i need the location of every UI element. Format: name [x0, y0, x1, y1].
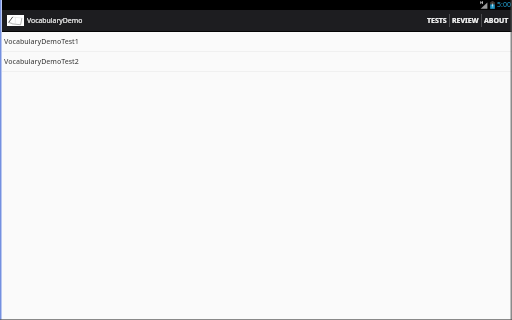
- staticText: 5:00: [497, 0, 511, 10]
- button[interactable]: REVIEW: [450, 10, 481, 31]
- button[interactable]: VocabularyDemoTest1: [0, 32, 512, 51]
- button[interactable]: App icon: [0, 10, 87, 31]
- staticText: TESTS: [427, 16, 447, 26]
- button[interactable]: VocabularyDemoTest2: [0, 52, 512, 71]
- staticText: VocabularyDemo: [27, 16, 83, 25]
- staticText: ABOUT: [484, 16, 509, 26]
- staticText: REVIEW: [452, 16, 479, 26]
- other: App icon: [7, 15, 24, 26]
- button[interactable]: TESTS: [425, 10, 449, 31]
- staticText: VocabularyDemoTest2: [4, 57, 79, 67]
- staticText: VocabularyDemoTest1: [4, 37, 79, 47]
- button[interactable]: ABOUT: [482, 10, 511, 31]
